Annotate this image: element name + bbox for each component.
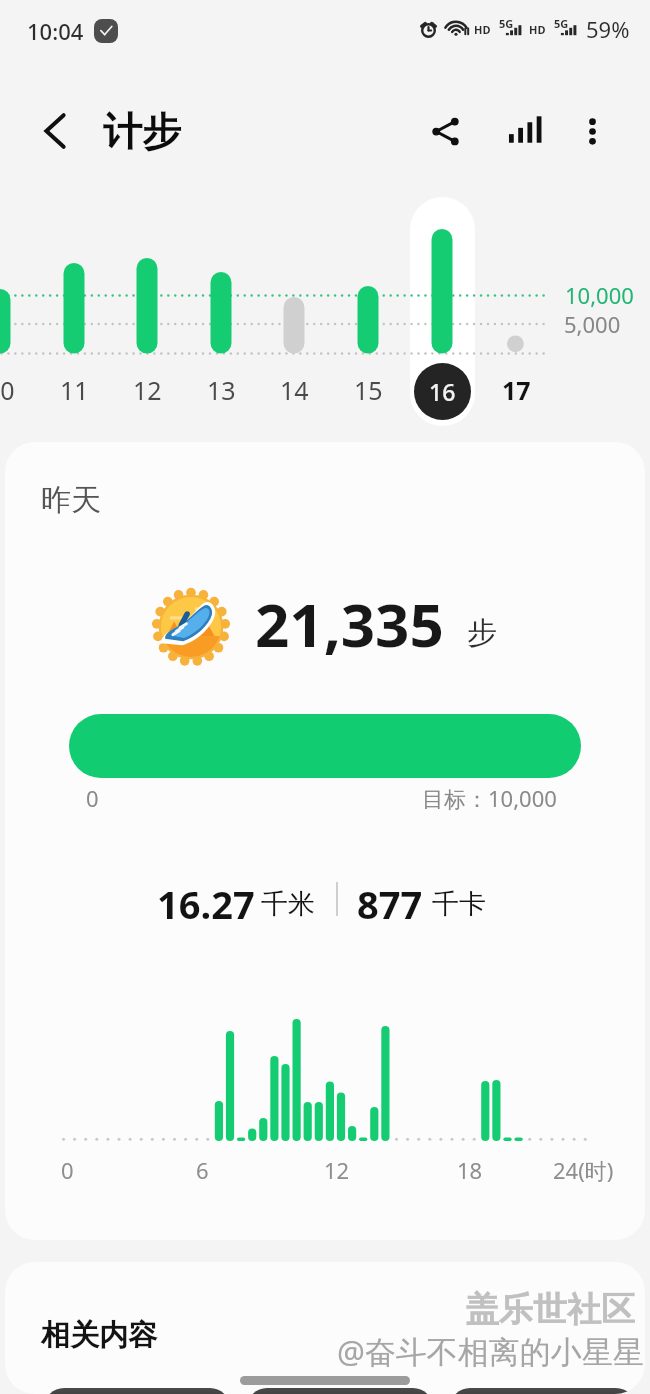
staticText: 0 bbox=[61, 1155, 74, 1185]
staticText: 16.27 bbox=[157, 878, 255, 930]
staticText: 59% bbox=[586, 14, 630, 44]
button[interactable]: 相关内容 bbox=[5, 1262, 645, 1394]
staticText: 10:04 bbox=[27, 16, 84, 46]
staticText: 步 bbox=[467, 614, 497, 652]
staticText: 16 bbox=[429, 376, 456, 407]
staticText: 昨天 bbox=[41, 481, 101, 519]
staticText: @奋斗不相离的小星星 bbox=[337, 1330, 644, 1372]
button[interactable]: Statistics chart bbox=[488, 97, 556, 165]
staticText: 12 bbox=[133, 373, 162, 407]
staticText: 24(时) bbox=[553, 1155, 614, 1185]
staticText: 11 bbox=[60, 373, 89, 407]
staticText: 千卡 bbox=[432, 887, 486, 921]
staticText: 17 bbox=[502, 373, 531, 407]
staticText: 10 bbox=[0, 373, 15, 407]
staticText: 15 bbox=[354, 373, 383, 407]
staticText: 13 bbox=[207, 373, 236, 407]
staticText: 21,335 bbox=[255, 583, 444, 665]
staticText: 18 bbox=[457, 1155, 483, 1185]
staticText: 千米 bbox=[261, 887, 315, 921]
button[interactable]: More options bbox=[558, 97, 626, 165]
staticText: 目标：10,000 bbox=[422, 783, 557, 813]
staticText: HD bbox=[529, 22, 546, 37]
staticText: 12 bbox=[324, 1155, 350, 1185]
staticText: 6 bbox=[196, 1155, 209, 1185]
button[interactable]: Share bbox=[411, 97, 479, 165]
staticText: 相关内容 bbox=[41, 1317, 157, 1354]
staticText: HD bbox=[474, 22, 491, 37]
button[interactable]: Selected day 16 bbox=[410, 197, 475, 426]
staticText: 5G bbox=[499, 16, 514, 31]
staticText: 10,000 bbox=[565, 280, 634, 310]
staticText: 0 bbox=[86, 783, 99, 813]
button[interactable]: Back bbox=[21, 97, 89, 165]
staticText: 5G bbox=[554, 16, 569, 31]
staticText: 盖乐世社区 bbox=[465, 1288, 635, 1331]
staticText: 计步 bbox=[103, 107, 181, 156]
staticText: 877 bbox=[357, 878, 423, 930]
staticText: 14 bbox=[280, 373, 309, 407]
staticText: 5,000 bbox=[564, 309, 621, 339]
